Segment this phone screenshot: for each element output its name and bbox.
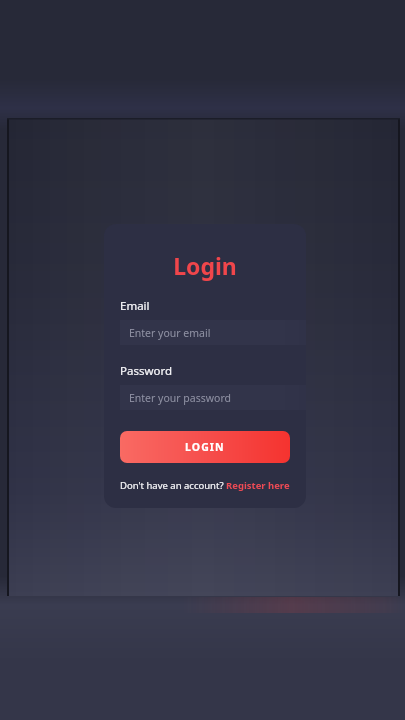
staticText: Register here xyxy=(226,479,290,492)
staticText: Email xyxy=(120,298,150,314)
staticText: LOGIN xyxy=(185,440,225,454)
button[interactable]: Email input xyxy=(120,320,306,345)
staticText: Enter your email xyxy=(129,326,211,340)
button[interactable]: LOGIN xyxy=(120,431,290,463)
staticText: Login xyxy=(104,250,306,281)
button[interactable]: Password input xyxy=(120,385,306,410)
staticText: Password xyxy=(120,363,173,379)
button[interactable]: Register here xyxy=(226,479,290,492)
staticText: Don't have an account? xyxy=(120,479,226,492)
staticText: Enter your password xyxy=(129,391,231,405)
